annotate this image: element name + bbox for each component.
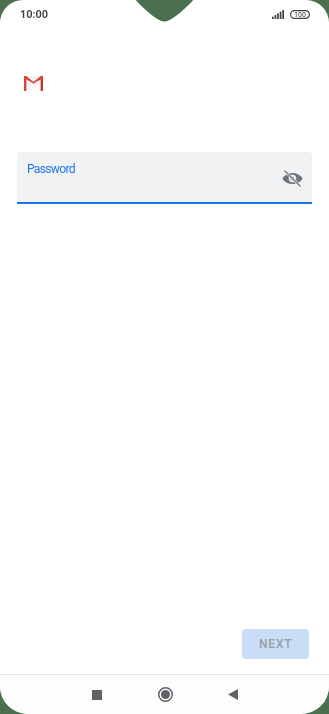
button[interactable]: Show password [280, 166, 304, 190]
button[interactable]: NEXT [242, 629, 309, 659]
button[interactable]: Home [143, 675, 187, 714]
staticText: NEXT [259, 637, 293, 651]
button[interactable]: Back [211, 675, 255, 714]
staticText: Password [27, 162, 75, 176]
button[interactable]: Password [17, 152, 312, 202]
button[interactable]: Recents [75, 675, 119, 714]
staticText: 100 [294, 11, 306, 19]
staticText: 10:00 [20, 8, 48, 21]
